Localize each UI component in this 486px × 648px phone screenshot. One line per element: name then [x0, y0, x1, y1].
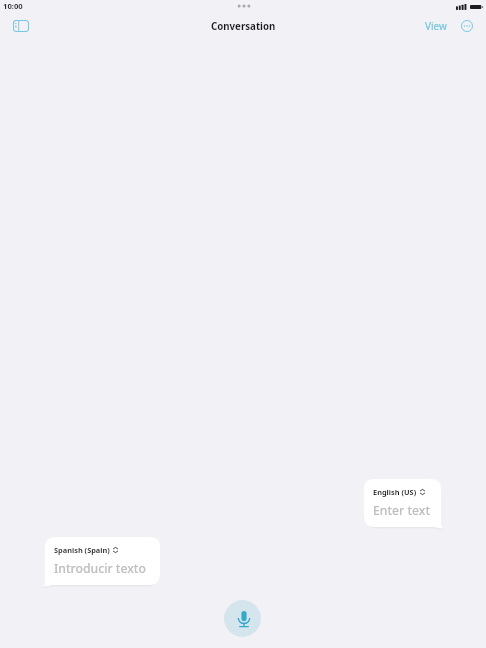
- staticText: Introducir texto: [54, 560, 146, 577]
- button[interactable]: Show sidebar: [7, 14, 35, 38]
- staticText: Conversation: [211, 20, 276, 33]
- staticText: English (US): [373, 487, 417, 497]
- staticText: Enter text: [373, 502, 431, 519]
- button[interactable]: Record speech: [224, 600, 261, 637]
- staticText: Spanish (Spain): [54, 545, 110, 555]
- button[interactable]: More options: [459, 18, 475, 34]
- button[interactable]: English (US): [364, 479, 441, 519]
- staticText: View: [425, 19, 447, 33]
- staticText: 10:00: [3, 1, 23, 11]
- button[interactable]: Spanish (Spain): [45, 537, 160, 577]
- button[interactable]: View: [422, 16, 450, 36]
